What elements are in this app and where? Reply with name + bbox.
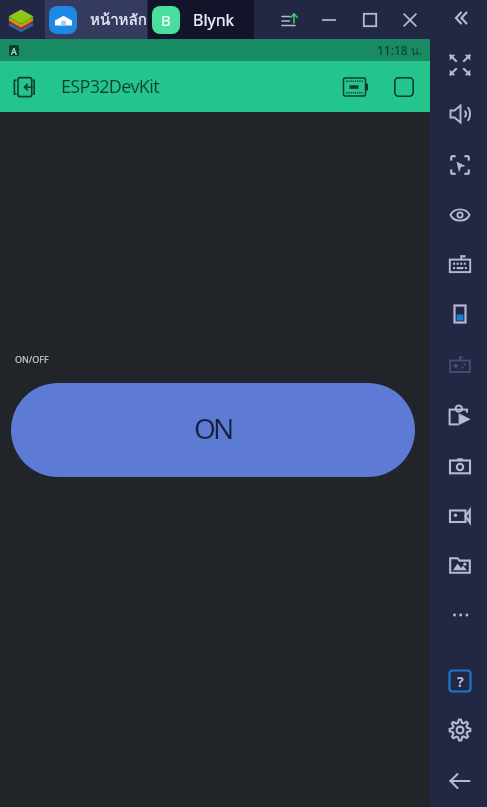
button[interactable]: Fullscreen [438,43,482,87]
button[interactable]: More [438,593,482,637]
button[interactable]: Collapse [438,0,482,40]
button[interactable]: Keyboard [438,242,482,286]
button[interactable]: Screenshot [438,443,482,487]
button[interactable]: Volume [438,92,482,136]
staticText: ? [457,672,464,691]
button[interactable]: Pointer lock [438,143,482,187]
staticText: หน้าหลัก [90,8,147,32]
button[interactable]: Gallery [438,543,482,587]
button[interactable]: Macro [438,393,482,437]
button[interactable]: หน้าหลัก [45,0,147,39]
button[interactable]: Device info [333,65,377,109]
button[interactable]: B [148,0,254,39]
button[interactable]: Settings [438,708,482,752]
staticText: ON/OFF [15,353,49,365]
button[interactable]: ON [11,383,415,477]
button[interactable]: Record [438,493,482,537]
button[interactable]: Back [438,759,482,803]
staticText: A [11,45,17,56]
button[interactable]: Help [438,659,482,703]
button[interactable]: Upload [270,0,310,39]
staticText: B [161,10,171,30]
button[interactable]: Gamepad [438,343,482,387]
button[interactable]: Close [390,0,430,39]
staticText: ON [194,409,232,447]
staticText: ESP32DevKit [61,74,160,99]
button[interactable]: Minimize [309,0,349,39]
button[interactable]: Stop [382,65,426,109]
button[interactable]: Maximize [350,0,390,39]
staticText: 11:18 น. [377,41,423,60]
button[interactable]: Exit device [1,65,45,109]
button[interactable]: Eye [438,193,482,237]
staticText: Blynk [193,9,235,31]
button[interactable]: Phone [438,292,482,336]
